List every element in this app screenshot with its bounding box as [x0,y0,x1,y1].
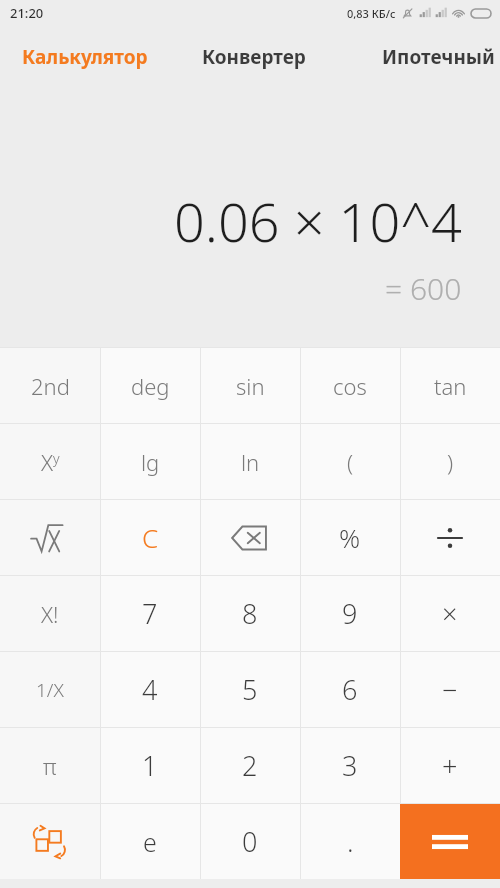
staticText: e [143,825,157,859]
staticText: × [442,595,458,632]
staticText: 7 [142,595,158,632]
staticText: % [339,520,361,555]
staticText: lg [141,447,160,477]
staticText: 6 [342,671,358,708]
button[interactable]: − [400,652,500,727]
staticText: 8 [242,595,258,632]
button[interactable]: sin [200,348,300,423]
staticText: ( [347,447,354,477]
button[interactable]: × [400,576,500,651]
staticText: 0 [242,823,258,860]
button[interactable]: 1/X [0,652,100,727]
button[interactable]: tan [400,348,500,423]
button[interactable]: 2 [200,728,300,803]
button[interactable]: cos [300,348,400,423]
staticText: 4 [142,671,158,708]
button[interactable]: 6 [300,652,400,727]
button[interactable]: Backspace [200,500,300,575]
staticText: 0,83 КБ/с [347,6,396,21]
button[interactable]: 5 [200,652,300,727]
staticText: tan [434,371,467,401]
button[interactable]: 7 [100,576,200,651]
staticText: − [442,671,458,708]
staticText: . [347,823,354,860]
button[interactable]: Ипотечный [360,26,500,120]
button[interactable]: 3 [300,728,400,803]
button[interactable]: 8 [200,576,300,651]
button[interactable]: X! [0,576,100,651]
staticText: 2 [242,747,258,784]
staticText: Калькулятор [22,44,148,70]
button[interactable]: ) [400,424,500,499]
button[interactable]: % [300,500,400,575]
staticText: ln [241,447,260,477]
staticText: 21:20 [10,4,44,22]
staticText: X! [41,599,59,629]
button[interactable]: + [400,728,500,803]
button[interactable]: 2nd [0,348,100,423]
staticText: = 600 [385,268,462,309]
staticText: Конвертер [202,44,306,70]
staticText: cos [333,371,367,401]
staticText: 1 [142,747,158,784]
staticText: Xy [41,447,60,477]
button[interactable]: Калькулятор [0,26,180,120]
button[interactable]: 4 [100,652,200,727]
button[interactable]: deg [100,348,200,423]
button[interactable]: ( [300,424,400,499]
button[interactable]: 1 [100,728,200,803]
button[interactable]: 9 [300,576,400,651]
button[interactable]: lg [100,424,200,499]
staticText: π [43,751,57,781]
staticText: 5 [242,671,258,708]
staticText: C [142,520,159,555]
button[interactable]: ln [200,424,300,499]
staticText: Ипотечный [382,44,495,70]
button[interactable]: Equals [400,804,500,879]
button[interactable]: x to the power of y [0,424,100,499]
button[interactable]: C [100,500,200,575]
staticText: sin [236,371,265,401]
button[interactable]: Convert [0,804,100,879]
staticText: + [442,747,458,784]
button[interactable]: e [100,804,200,879]
button[interactable]: . [300,804,400,879]
staticText: 2nd [31,371,70,401]
staticText: 9 [342,595,358,632]
button[interactable]: Square root [0,500,100,575]
staticText: ) [447,447,454,477]
button[interactable]: 0 [200,804,300,879]
staticText: 3 [342,747,358,784]
button[interactable]: Divide [400,500,500,575]
staticText: deg [131,371,170,401]
button[interactable]: Конвертер [180,26,360,120]
staticText: 0.06 × 10^4 [174,184,462,258]
button[interactable]: π [0,728,100,803]
staticText: 1/X [36,677,64,703]
